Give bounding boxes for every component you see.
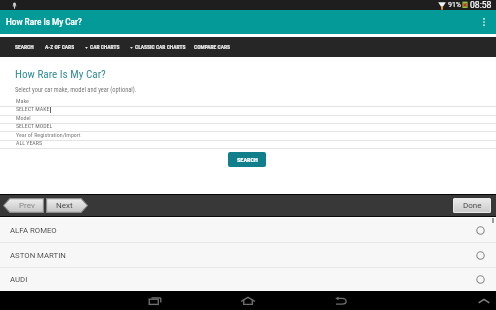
staticText: AUDI xyxy=(10,275,28,284)
button[interactable]: Back xyxy=(332,294,350,307)
staticText: ALFA ROMEO xyxy=(10,226,57,235)
staticText: How Rare Is My Car? xyxy=(6,17,82,27)
staticText: A-Z OF CARS xyxy=(45,44,75,50)
staticText: 08:58 xyxy=(470,0,492,10)
button[interactable]: Done xyxy=(453,198,491,213)
staticText: SEARCH xyxy=(15,44,34,50)
button[interactable]: Home xyxy=(239,294,257,307)
staticText: CAR CHARTS xyxy=(90,44,120,50)
staticText: 91% xyxy=(448,1,461,9)
button[interactable]: ASTON MARTIN xyxy=(0,243,496,268)
staticText: CLASSIC CAR CHARTS xyxy=(135,44,186,50)
button[interactable]: Next xyxy=(46,198,88,213)
button[interactable]: CLASSIC CAR CHARTS xyxy=(130,37,186,57)
button[interactable]: More options xyxy=(472,10,496,34)
button[interactable]: SEARCH xyxy=(228,152,266,167)
staticText: How Rare Is My Car? xyxy=(15,68,106,81)
staticText: Make xyxy=(16,97,29,104)
button[interactable]: Recents xyxy=(146,294,164,307)
staticText: SELECT MODEL xyxy=(16,123,53,130)
button[interactable]: SEARCH xyxy=(15,37,34,57)
staticText: ASTON MARTIN xyxy=(10,251,66,260)
button[interactable]: CAR CHARTS xyxy=(85,37,120,57)
staticText: Done xyxy=(463,201,482,210)
button[interactable]: AUDI xyxy=(0,267,496,292)
staticText: Year of Registration/Import xyxy=(16,131,81,138)
button[interactable]: How Rare Is My Car? xyxy=(0,10,496,34)
staticText: Next xyxy=(56,201,73,210)
button[interactable]: Prev xyxy=(3,198,44,213)
staticText: SEARCH xyxy=(237,156,258,163)
button[interactable]: ALFA ROMEO xyxy=(0,218,496,243)
staticText: Model xyxy=(16,114,31,121)
staticText: ALL YEARS xyxy=(16,140,42,147)
staticText: Select your car make, model and year (op… xyxy=(15,86,137,94)
button[interactable]: COMPARE CARS xyxy=(194,37,231,57)
button[interactable]: Show navigation bar xyxy=(477,295,491,307)
staticText: COMPARE CARS xyxy=(194,44,231,50)
button[interactable]: A-Z OF CARS xyxy=(45,37,75,57)
staticText: SELECT MAKE xyxy=(16,106,50,113)
staticText: Prev xyxy=(19,201,35,210)
